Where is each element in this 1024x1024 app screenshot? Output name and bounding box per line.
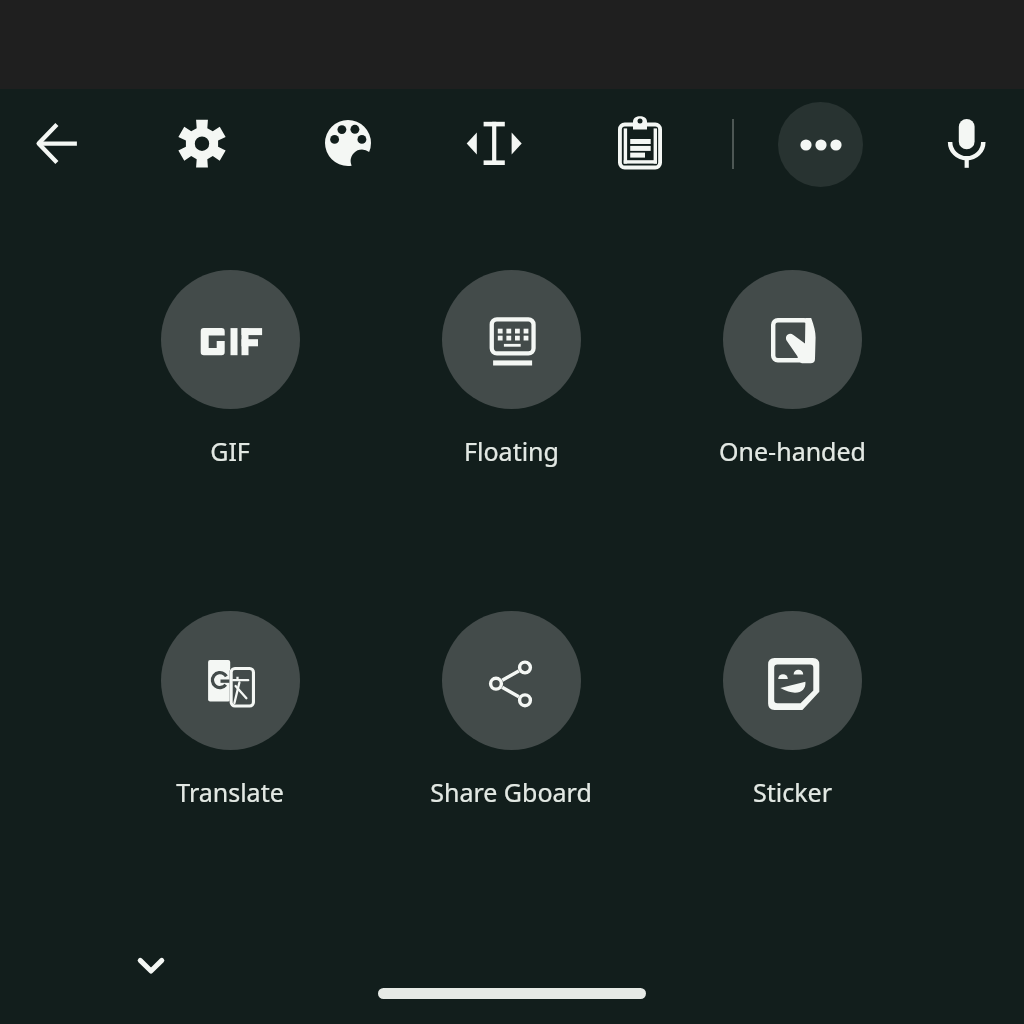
button[interactable]: Move cursor xyxy=(453,104,533,184)
button[interactable]: Themes xyxy=(308,103,388,183)
button[interactable]: Voice input xyxy=(926,104,1006,184)
staticText: Share Gboard xyxy=(430,775,592,809)
button[interactable]: Share Gboard xyxy=(401,611,621,811)
button[interactable]: Sticker xyxy=(682,611,902,811)
staticText: Floating xyxy=(464,434,559,468)
staticText: Translate xyxy=(176,775,284,809)
button[interactable]: Settings xyxy=(162,104,242,184)
staticText: GIF xyxy=(210,434,250,468)
button[interactable]: Back xyxy=(17,104,97,184)
button[interactable]: Floating xyxy=(401,270,621,470)
button[interactable]: Translate xyxy=(120,611,340,811)
button[interactable]: More options xyxy=(768,92,872,196)
staticText: Sticker xyxy=(753,775,832,809)
button[interactable]: Collapse keyboard xyxy=(117,930,185,998)
button[interactable]: Clipboard xyxy=(600,106,680,186)
button[interactable]: One-handed xyxy=(682,270,902,470)
staticText: One-handed xyxy=(719,434,866,468)
button[interactable]: GIF xyxy=(120,270,340,470)
